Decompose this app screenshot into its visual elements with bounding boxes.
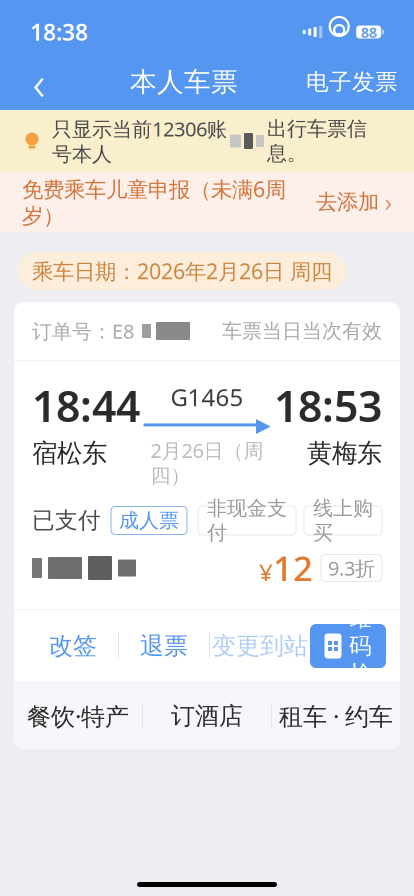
staticText: 非现金支付 bbox=[207, 496, 287, 545]
staticText: ‹ bbox=[32, 50, 45, 114]
staticText: G1465 bbox=[170, 381, 243, 413]
button[interactable]: 电子发票 bbox=[302, 60, 402, 104]
staticText: 88 bbox=[361, 22, 377, 42]
staticText: 退票 bbox=[140, 631, 188, 661]
button[interactable]: 变更到站 bbox=[210, 615, 310, 677]
staticText: 本人车票 bbox=[130, 66, 238, 98]
staticText: 18:53 bbox=[274, 377, 382, 434]
button[interactable]: 餐饮·特产 bbox=[14, 683, 142, 749]
staticText: 9.3折 bbox=[328, 555, 375, 581]
staticText: ▶ bbox=[255, 413, 270, 436]
staticText: 黄梅东 bbox=[307, 438, 382, 469]
staticText: 车票当日当次有效 bbox=[222, 319, 382, 343]
button[interactable]: 免费乘车儿童申报（未满6周岁） bbox=[0, 172, 414, 232]
button[interactable]: 改签 bbox=[28, 615, 118, 677]
staticText: 出行车票信息。 bbox=[267, 116, 367, 165]
staticText: 已支付 bbox=[32, 507, 101, 534]
staticText: › bbox=[385, 185, 392, 219]
button[interactable]: 返回 bbox=[12, 60, 66, 104]
staticText: 变更到站 bbox=[212, 631, 308, 661]
staticText: 订单号：E8 bbox=[32, 318, 134, 344]
staticText: 12 bbox=[273, 545, 313, 591]
staticText: 订酒店 bbox=[171, 701, 243, 731]
staticText: 2月26日（周四） bbox=[150, 437, 263, 488]
staticText: 租车 · 约车 bbox=[279, 700, 393, 732]
staticText: ¥ bbox=[259, 556, 273, 588]
staticText: 免费乘车儿童申报（未满6周岁） bbox=[22, 175, 286, 229]
button[interactable]: 退票 bbox=[119, 615, 209, 677]
staticText: 餐饮·特产 bbox=[27, 700, 129, 732]
button[interactable]: 二维码检票 bbox=[310, 624, 386, 668]
staticText: 线上购买 bbox=[313, 496, 373, 545]
button[interactable]: 订酒店 bbox=[143, 683, 271, 749]
staticText: 二维码检票 bbox=[349, 576, 372, 716]
staticText: 宿松东 bbox=[32, 438, 107, 469]
button[interactable]: 租车 · 约车 bbox=[272, 683, 400, 749]
staticText: 只显示当前12306账号本人 bbox=[52, 115, 227, 166]
staticText: 去添加 bbox=[316, 189, 379, 215]
staticText: 电子发票 bbox=[306, 68, 398, 96]
staticText: 乘车日期：2026年2月26日 周四 bbox=[32, 257, 332, 285]
staticText: 18:44 bbox=[32, 377, 140, 434]
staticText: 18:38 bbox=[30, 17, 88, 47]
staticText: 改签 bbox=[49, 631, 97, 661]
staticText: 成人票 bbox=[119, 508, 179, 533]
